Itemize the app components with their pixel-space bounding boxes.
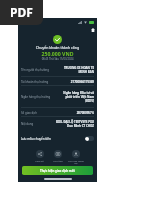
button[interactable]: Home bbox=[88, 25, 97, 34]
staticText: Tài khoản thụ hưởng bbox=[21, 80, 51, 84]
staticText: 287080957 6 bbox=[52, 111, 94, 115]
staticText: Chuyển khoản thành công bbox=[18, 45, 97, 50]
staticText: 21700066175369 bbox=[52, 80, 94, 84]
staticText: 250.000 VND bbox=[18, 50, 97, 57]
staticText: Ngân hàng thụ hưởng bbox=[21, 95, 51, 99]
staticText: Thực hiện giao dịch mới bbox=[40, 169, 75, 173]
staticText: PDF bbox=[10, 4, 33, 20]
staticText: BIDL ĐẠI LỘ TESTVSYS PXU Duo Minh CT CHO… bbox=[52, 120, 94, 128]
button[interactable]: Thực hiện giao dịch mới bbox=[22, 166, 93, 175]
staticText: Số giao dịch bbox=[21, 111, 51, 115]
button[interactable]: Lưu ảnh bbox=[49, 150, 67, 162]
staticText: Nội dung bbox=[21, 122, 51, 126]
staticText: Tên người thụ hưởng bbox=[21, 68, 51, 72]
button[interactable]: Lưu vào danh bạ bbox=[67, 150, 85, 165]
staticText: Lưu ảnh bbox=[53, 159, 63, 162]
staticText: Chia sẻ bbox=[35, 159, 44, 162]
staticText: TRUONG DI HOAN TE MINH BAN bbox=[52, 66, 94, 74]
button[interactable]: Lưu mẫu chuyển tiền bbox=[21, 134, 94, 143]
staticText: 08:45 Thứ Sáu 15/03/2024 bbox=[18, 57, 97, 61]
staticText: Lưu vào danh bạ bbox=[67, 159, 85, 165]
staticText: Ngân hàng Đầu tư và phát triển Việt Nam … bbox=[52, 91, 94, 103]
button[interactable]: Chia sẻ bbox=[30, 150, 49, 162]
staticText: Lưu mẫu chuyển tiền bbox=[21, 137, 51, 141]
